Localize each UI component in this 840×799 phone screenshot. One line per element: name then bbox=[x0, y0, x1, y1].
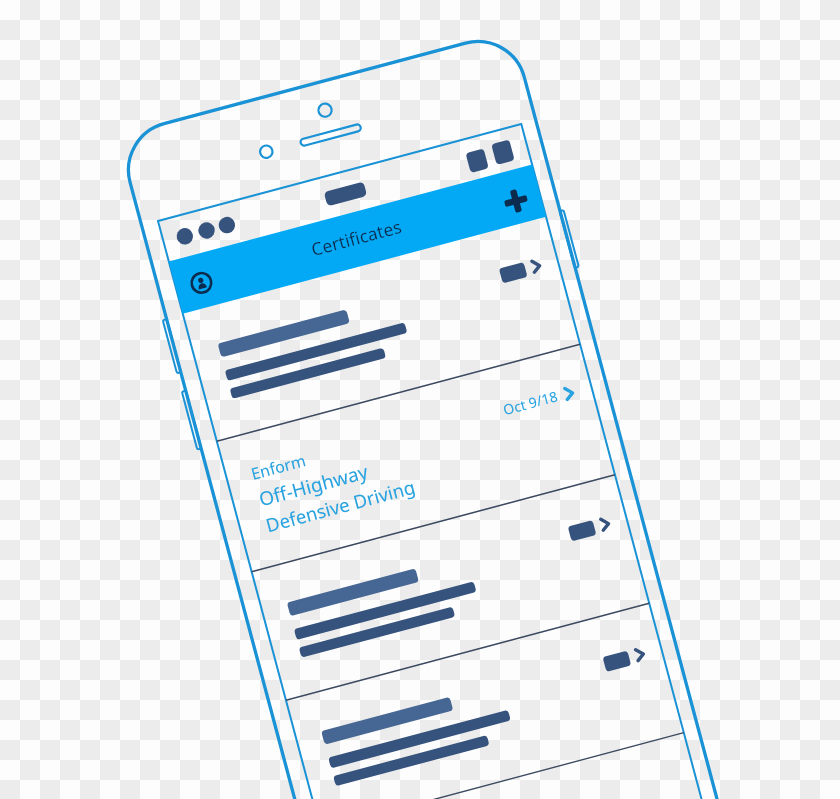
button[interactable]: Certificate row 5 bbox=[320, 733, 718, 799]
button[interactable]: Add certificate bbox=[499, 184, 533, 218]
button[interactable]: Certificate row 1 bbox=[182, 216, 580, 441]
button[interactable]: Enform Off-Highway Defensive Driving, Oc… bbox=[217, 344, 615, 572]
button[interactable]: Certificate row 4 bbox=[286, 603, 684, 799]
button[interactable]: Account bbox=[184, 266, 219, 300]
button[interactable]: Certificate row 3 bbox=[252, 475, 649, 700]
